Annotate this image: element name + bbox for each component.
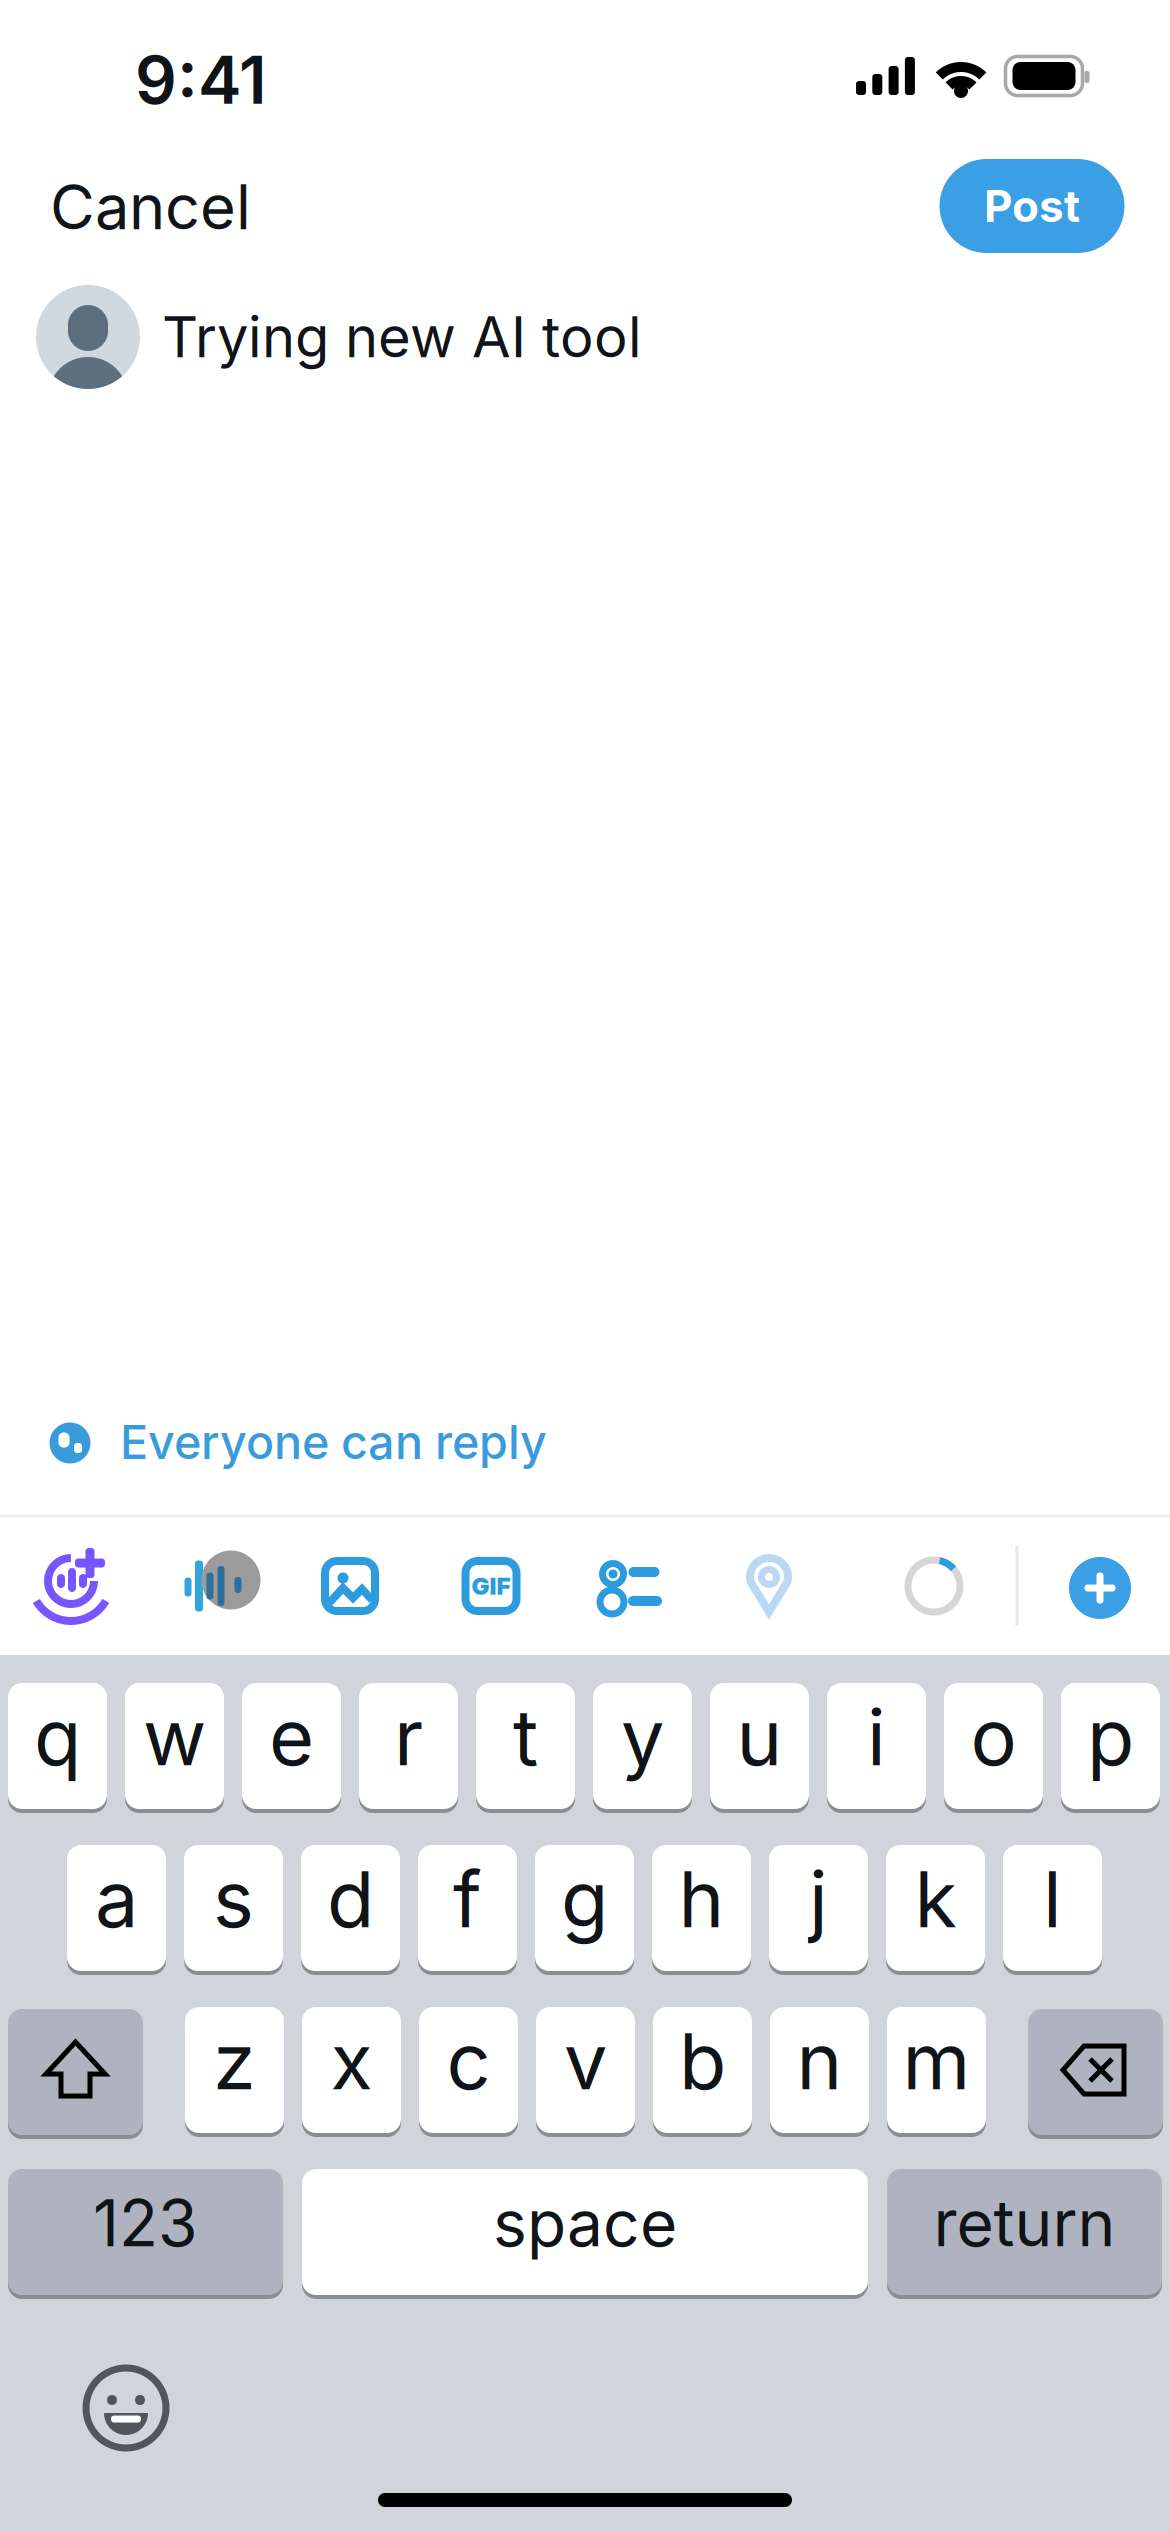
button[interactable]: a <box>67 1843 166 1973</box>
button[interactable]: Add GIF <box>446 1541 536 1631</box>
button[interactable]: Emoji <box>76 2358 176 2458</box>
button[interactable]: Record voice <box>162 1529 282 1639</box>
button[interactable]: e <box>242 1681 341 1811</box>
button[interactable]: Tag location <box>724 1543 814 1633</box>
staticText: w <box>143 1691 206 1783</box>
button[interactable]: 123 <box>8 2167 283 2297</box>
staticText: Everyone can reply <box>120 1414 547 1470</box>
staticText: 123 <box>93 2185 198 2261</box>
button[interactable]: r <box>359 1681 458 1811</box>
staticText: m <box>902 2015 970 2107</box>
button[interactable]: n <box>770 2005 869 2135</box>
staticText: 9:41 <box>135 41 267 119</box>
staticText: t <box>513 1691 538 1783</box>
button[interactable]: Add another post <box>1069 1557 1131 1619</box>
button[interactable]: Post <box>939 159 1124 253</box>
button[interactable]: s <box>184 1843 283 1973</box>
button[interactable]: u <box>710 1681 809 1811</box>
button[interactable]: q <box>8 1681 107 1811</box>
button[interactable]: j <box>769 1843 868 1973</box>
staticText: c <box>446 2015 490 2107</box>
staticText: y <box>621 1691 664 1783</box>
staticText: u <box>736 1691 782 1783</box>
button[interactable]: o <box>944 1681 1043 1811</box>
button[interactable]: t <box>476 1681 575 1811</box>
button[interactable]: d <box>301 1843 400 1973</box>
button[interactable]: space <box>302 2167 868 2297</box>
staticText: d <box>327 1853 374 1945</box>
button[interactable]: Add poll <box>580 1542 680 1632</box>
staticText: p <box>1087 1691 1134 1783</box>
staticText: h <box>678 1853 724 1945</box>
staticText: j <box>809 1853 828 1945</box>
button[interactable]: Cancel <box>50 162 350 252</box>
button[interactable]: Delete <box>1028 2007 1163 2137</box>
staticText: space <box>493 2185 677 2261</box>
button[interactable]: return <box>887 2167 1162 2297</box>
staticText: Cancel <box>50 171 251 243</box>
staticText: l <box>1043 1853 1062 1945</box>
staticText: n <box>796 2015 842 2107</box>
staticText: e <box>269 1691 314 1783</box>
staticText: Post <box>984 180 1080 232</box>
button[interactable]: w <box>125 1681 224 1811</box>
staticText: v <box>564 2015 607 2107</box>
button[interactable]: i <box>827 1681 926 1811</box>
staticText: x <box>330 2015 372 2107</box>
button[interactable]: k <box>886 1843 985 1973</box>
button[interactable]: f <box>418 1843 517 1973</box>
staticText: GIF <box>471 1572 510 1600</box>
button[interactable]: l <box>1003 1843 1102 1973</box>
staticText: i <box>867 1691 886 1783</box>
staticText: s <box>213 1853 254 1945</box>
button[interactable]: c <box>419 2005 518 2135</box>
staticText: q <box>34 1691 81 1783</box>
button[interactable]: h <box>652 1843 751 1973</box>
staticText: o <box>970 1691 1016 1783</box>
staticText: z <box>213 2015 256 2107</box>
button[interactable]: y <box>593 1681 692 1811</box>
button[interactable]: g <box>535 1843 634 1973</box>
staticText: a <box>95 1853 138 1945</box>
button[interactable]: x <box>302 2005 401 2135</box>
button[interactable]: v <box>536 2005 635 2135</box>
button[interactable]: Add photo <box>305 1541 395 1631</box>
staticText: g <box>561 1853 608 1945</box>
button[interactable]: Enhance with AI <box>20 1528 130 1638</box>
button[interactable]: m <box>887 2005 986 2135</box>
button[interactable]: Everyone can reply <box>50 1398 690 1488</box>
button[interactable]: z <box>185 2005 284 2135</box>
staticText: k <box>914 1853 956 1945</box>
staticText: b <box>679 2015 726 2107</box>
staticText: return <box>933 2185 1115 2261</box>
staticText: Trying new AI tool <box>162 304 642 370</box>
button[interactable]: Shift <box>8 2007 143 2137</box>
staticText: f <box>453 1853 482 1945</box>
button[interactable]: b <box>653 2005 752 2135</box>
staticText: r <box>394 1691 423 1783</box>
button[interactable]: p <box>1061 1681 1160 1811</box>
